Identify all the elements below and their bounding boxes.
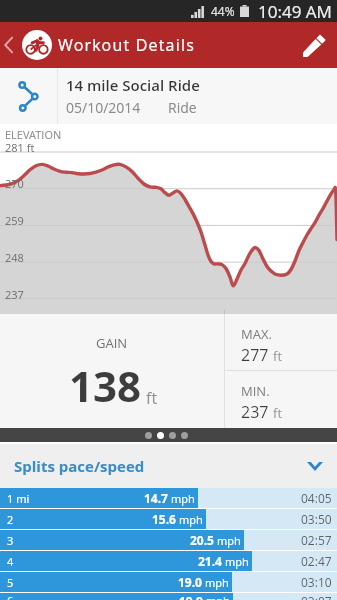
- staticText: Splits pace/speed: [14, 456, 145, 476]
- button[interactable]: 3: [0, 530, 337, 550]
- staticText: 02:57: [301, 532, 332, 548]
- staticText: mph: [205, 575, 229, 590]
- staticText: 03:07: [301, 593, 332, 600]
- staticText: 44%: [211, 3, 235, 19]
- staticText: 03:10: [301, 574, 332, 590]
- staticText: ft: [273, 404, 282, 422]
- staticText: 19.0: [178, 574, 202, 590]
- staticText: MAX.: [241, 325, 272, 343]
- staticText: 14.7: [144, 490, 168, 506]
- staticText: 237: [5, 287, 24, 302]
- staticText: 277: [241, 344, 269, 366]
- staticText: mph: [225, 554, 249, 569]
- staticText: 21.4: [198, 553, 222, 569]
- staticText: 270: [5, 176, 24, 191]
- staticText: 02:47: [301, 553, 332, 569]
- staticText: 2: [7, 512, 14, 527]
- staticText: 3: [7, 533, 14, 548]
- staticText: 14 mile Social Ride: [66, 75, 200, 95]
- button[interactable]: 1 mi: [0, 488, 337, 508]
- staticText: MIN.: [241, 382, 270, 400]
- staticText: 05/10/2014: [66, 98, 141, 117]
- staticText: 248: [5, 250, 24, 265]
- staticText: 259: [5, 213, 24, 228]
- staticText: 04:05: [301, 490, 332, 506]
- button[interactable]: 2: [0, 509, 337, 529]
- staticText: GAIN: [96, 334, 128, 352]
- staticText: mph: [217, 533, 241, 548]
- button[interactable]: MAX.: [225, 314, 337, 370]
- button[interactable]: 6: [0, 593, 337, 600]
- staticText: mph: [206, 593, 230, 600]
- staticText: 10:49 AM: [258, 0, 332, 22]
- staticText: mph: [179, 512, 203, 527]
- staticText: Ride: [168, 98, 197, 117]
- staticText: 1 mi: [7, 491, 30, 506]
- staticText: 281 ft: [5, 140, 35, 155]
- staticText: ft: [273, 347, 282, 365]
- staticText: Workout Details: [58, 34, 195, 56]
- staticText: 4: [7, 554, 14, 569]
- button[interactable]: 5: [0, 572, 337, 592]
- staticText: mph: [171, 491, 195, 506]
- staticText: 15.6: [152, 511, 176, 527]
- staticText: 03:50: [301, 511, 332, 527]
- button[interactable]: 4: [0, 551, 337, 571]
- button[interactable]: GAIN: [0, 314, 224, 428]
- staticText: 20.5: [190, 532, 214, 548]
- button[interactable]: Splits pace/speed: [0, 444, 337, 488]
- staticText: ELEVATION: [5, 127, 62, 142]
- button[interactable]: Back: [0, 22, 54, 68]
- staticText: 138: [69, 357, 141, 414]
- staticText: ft: [146, 387, 158, 409]
- staticText: 237: [241, 401, 269, 423]
- button[interactable]: Edit: [291, 22, 337, 68]
- staticText: 6: [7, 593, 14, 600]
- button[interactable]: MIN.: [225, 371, 337, 428]
- staticText: 19.9: [179, 593, 203, 600]
- staticText: 5: [7, 575, 14, 590]
- button[interactable]: 14 mile Social Ride: [0, 68, 337, 124]
